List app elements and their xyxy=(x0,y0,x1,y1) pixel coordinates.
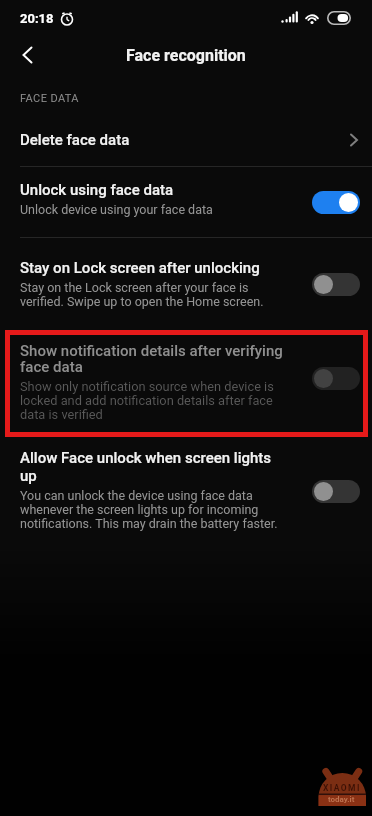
staticText: XIAOMI xyxy=(323,783,361,793)
button[interactable]: Stay on Lock screen after unlocking xyxy=(0,238,372,330)
button[interactable]: Unlock using face data xyxy=(0,167,372,237)
staticText: You can unlock the device using face dat… xyxy=(20,488,278,531)
button[interactable] xyxy=(312,480,360,503)
button[interactable] xyxy=(14,41,42,69)
staticText: Face recognition xyxy=(126,46,246,65)
staticText: Allow Face unlock when screen lights up xyxy=(20,449,272,485)
staticText: Show only notification source when devic… xyxy=(20,379,274,422)
staticText: Unlock using face data xyxy=(20,181,174,199)
button[interactable] xyxy=(312,273,360,296)
staticText: FACE DATA xyxy=(20,92,79,105)
staticText: Delete face data xyxy=(20,131,130,149)
button[interactable]: Delete face data xyxy=(0,114,372,166)
staticText: Unlock device using your face data xyxy=(20,202,213,217)
button[interactable]: Show notification details after verifyin… xyxy=(5,330,368,437)
button[interactable]: Allow Face unlock when screen lights up xyxy=(0,437,372,545)
button[interactable] xyxy=(312,367,360,390)
staticText: 20:18 xyxy=(20,11,54,26)
staticText: Stay on Lock screen after unlocking xyxy=(20,259,260,277)
staticText: Stay on the Lock screen after your face … xyxy=(20,280,264,309)
button[interactable] xyxy=(312,191,360,214)
staticText: Show notification details after verifyin… xyxy=(20,342,283,376)
staticText: today.it xyxy=(328,795,355,804)
